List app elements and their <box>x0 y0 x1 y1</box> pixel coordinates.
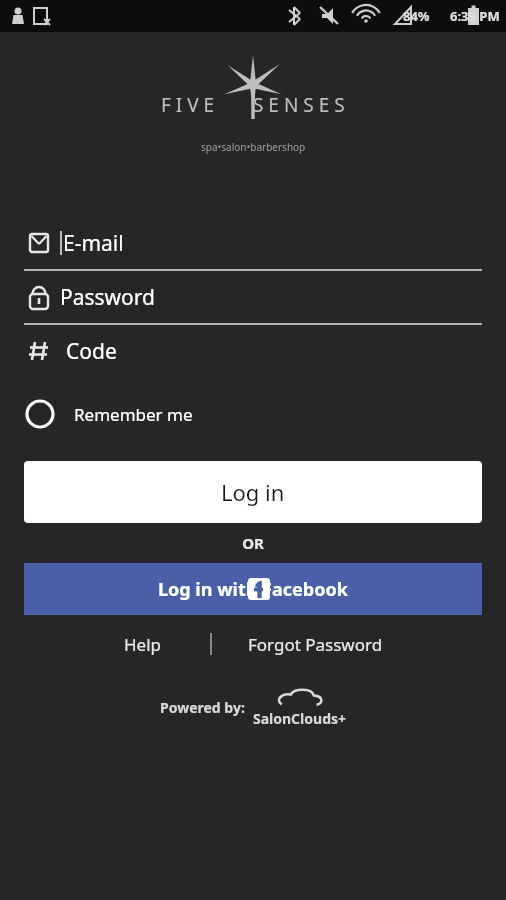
button[interactable]: Log in <box>24 461 482 523</box>
staticText: Log in <box>221 477 285 507</box>
staticText: Remember me <box>74 403 193 426</box>
staticText: OR <box>0 533 506 553</box>
staticText: 84% <box>403 7 430 25</box>
button[interactable]: Forgot Password <box>238 627 393 662</box>
staticText: Code <box>66 337 117 366</box>
staticText: Forgot Password <box>248 633 383 656</box>
staticText: SalonClouds+ <box>253 709 347 728</box>
staticText: Log in with Facebook <box>158 577 348 602</box>
button[interactable]: Code <box>24 325 482 377</box>
staticText: 6:39 PM <box>450 7 500 25</box>
staticText: spa•salon•barbershop <box>201 140 306 154</box>
staticText: E-mail <box>63 229 124 258</box>
staticText: Password <box>60 283 155 312</box>
button[interactable]: E-mail <box>24 217 482 269</box>
staticText: Help <box>124 633 162 656</box>
button[interactable]: Help <box>114 627 172 662</box>
button[interactable]: Password <box>24 271 482 323</box>
button[interactable]: Log in with Facebook <box>24 563 482 615</box>
staticText: F I V E <box>161 92 215 118</box>
button[interactable]: Remember me <box>24 387 482 441</box>
staticText: Powered by: <box>160 698 245 717</box>
staticText: S E N S E S <box>253 92 345 118</box>
